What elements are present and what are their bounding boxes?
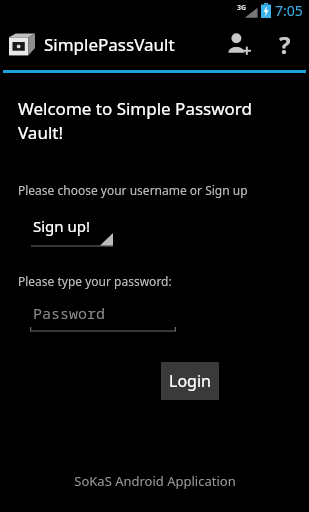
button[interactable]: Password (30, 303, 176, 333)
staticText: Sign up! (33, 216, 91, 236)
staticText: 3G (237, 3, 247, 13)
staticText: SimplePassVault (44, 33, 175, 56)
button[interactable]: Sign up! (31, 215, 113, 251)
button[interactable]: Add user (215, 20, 263, 68)
staticText: Welcome to Simple Password Vault! (18, 97, 291, 144)
staticText: ? (279, 28, 291, 61)
staticText: Please type your password: (18, 273, 172, 289)
staticText: Please choose your username or Sign up (18, 182, 248, 198)
staticText: 7:05 (275, 1, 303, 20)
button[interactable]: Help (263, 20, 307, 68)
staticText: SoKaS Android Application (74, 472, 236, 490)
button[interactable]: Login (161, 362, 219, 400)
staticText: Login (169, 370, 211, 392)
staticText: Password (33, 303, 106, 323)
